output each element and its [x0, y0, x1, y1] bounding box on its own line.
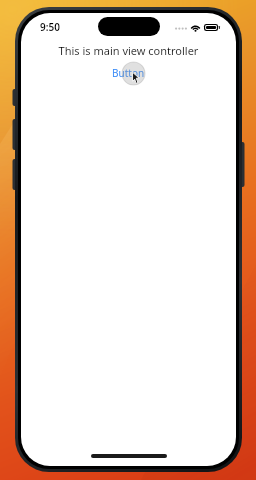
staticText: Button: [112, 66, 145, 80]
staticText: This is main view controller: [21, 43, 236, 58]
button[interactable]: Button: [106, 64, 151, 82]
staticText: 9:50: [40, 20, 60, 34]
